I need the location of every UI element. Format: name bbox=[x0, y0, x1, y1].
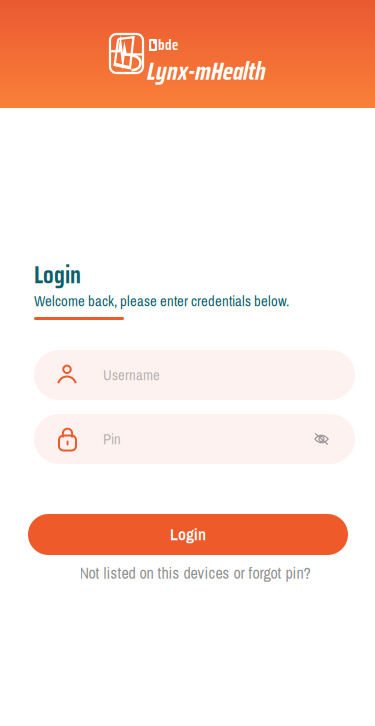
button[interactable]: Pin bbox=[34, 414, 355, 464]
staticText: Lynx-mHealth bbox=[147, 51, 266, 91]
button[interactable]: Login bbox=[28, 514, 348, 555]
button[interactable]: Username bbox=[34, 350, 355, 400]
staticText: Username bbox=[103, 365, 160, 385]
staticText: Login bbox=[34, 256, 81, 294]
staticText: Pin bbox=[103, 429, 121, 449]
staticText: Welcome back, please enter credentials b… bbox=[34, 291, 289, 311]
staticText: Login bbox=[170, 524, 206, 545]
button[interactable]: Not listed on this devices or forgot pin… bbox=[75, 564, 315, 582]
staticText: bde bbox=[158, 33, 178, 57]
staticText: Not listed on this devices or forgot pin… bbox=[79, 562, 310, 584]
